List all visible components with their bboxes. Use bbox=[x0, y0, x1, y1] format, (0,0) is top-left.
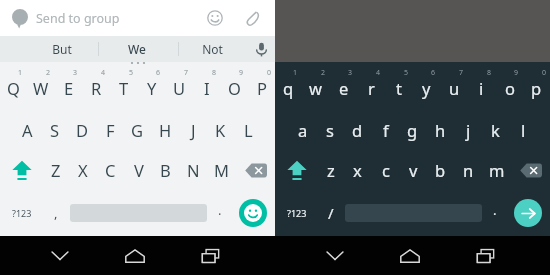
staticText: ?123 bbox=[287, 207, 307, 219]
button[interactable]: Y bbox=[138, 68, 165, 108]
button[interactable]: O bbox=[221, 68, 248, 108]
staticText: X bbox=[78, 159, 88, 181]
button[interactable]: x bbox=[344, 151, 371, 189]
button[interactable]: t bbox=[385, 68, 412, 108]
button[interactable]: Send bbox=[514, 199, 542, 227]
button[interactable]: y bbox=[413, 68, 440, 108]
button[interactable]: But bbox=[32, 36, 92, 62]
button[interactable]: B bbox=[152, 151, 179, 189]
button[interactable]: V bbox=[125, 151, 152, 189]
button[interactable]: E bbox=[55, 68, 82, 108]
button[interactable]: Send to group bbox=[0, 0, 275, 36]
button[interactable]: ?123 bbox=[277, 196, 317, 230]
staticText: We bbox=[128, 41, 146, 57]
staticText: q bbox=[283, 77, 294, 99]
button[interactable]: M bbox=[208, 151, 235, 189]
button[interactable]: Z bbox=[42, 151, 69, 189]
staticText: G bbox=[131, 119, 144, 141]
button[interactable]: N bbox=[180, 151, 207, 189]
button[interactable]: Back bbox=[317, 236, 353, 275]
button[interactable]: Back bbox=[42, 236, 78, 275]
button[interactable]: l bbox=[510, 111, 537, 149]
button[interactable]: U bbox=[166, 68, 193, 108]
button[interactable]: i bbox=[468, 68, 495, 108]
button[interactable]: P bbox=[248, 68, 275, 108]
staticText: m bbox=[489, 159, 505, 181]
button[interactable]: J bbox=[180, 111, 207, 149]
button[interactable]: Voice input bbox=[248, 36, 274, 62]
button[interactable]: d bbox=[344, 111, 371, 149]
staticText: J bbox=[191, 119, 196, 141]
button[interactable]: F bbox=[97, 111, 124, 149]
button[interactable]: S bbox=[41, 111, 68, 149]
staticText: Q bbox=[7, 77, 20, 99]
button[interactable]: j bbox=[455, 111, 482, 149]
button[interactable]: f bbox=[372, 111, 399, 149]
button[interactable]: T bbox=[110, 68, 137, 108]
staticText: 1 bbox=[18, 68, 23, 78]
staticText: W bbox=[33, 77, 49, 99]
button[interactable]: c bbox=[372, 151, 399, 189]
button[interactable]: C bbox=[97, 151, 124, 189]
staticText: 3 bbox=[348, 68, 353, 78]
button[interactable]: p bbox=[523, 68, 550, 108]
button[interactable]: / bbox=[319, 196, 343, 230]
button[interactable]: u bbox=[441, 68, 468, 108]
button[interactable]: g bbox=[399, 111, 426, 149]
button[interactable]: Q bbox=[0, 68, 27, 108]
staticText: 9 bbox=[239, 68, 244, 78]
staticText: 0 bbox=[542, 68, 547, 78]
button[interactable]: ?123 bbox=[2, 196, 42, 230]
button[interactable]: X bbox=[69, 151, 96, 189]
button[interactable]: z bbox=[317, 151, 344, 189]
button[interactable]: Attach file bbox=[241, 6, 265, 30]
button[interactable]: a bbox=[289, 111, 316, 149]
button[interactable]: h bbox=[427, 111, 454, 149]
button[interactable]: R bbox=[83, 68, 110, 108]
button[interactable]: b bbox=[427, 151, 454, 189]
button[interactable]: r bbox=[358, 68, 385, 108]
button[interactable]: Not bbox=[182, 36, 242, 62]
button[interactable]: w bbox=[302, 68, 329, 108]
button[interactable]: I bbox=[193, 68, 220, 108]
button[interactable]: We bbox=[107, 36, 167, 62]
button[interactable]: Home bbox=[392, 236, 428, 275]
button[interactable]: . bbox=[209, 196, 231, 230]
button[interactable]: G bbox=[124, 111, 151, 149]
button[interactable]: Recent apps bbox=[467, 236, 503, 275]
button[interactable]: Shift bbox=[278, 151, 316, 189]
button[interactable]: Backspace bbox=[513, 151, 549, 189]
staticText: / bbox=[328, 203, 334, 223]
staticText: 4 bbox=[376, 68, 381, 78]
button[interactable]: k bbox=[482, 111, 509, 149]
button[interactable]: H bbox=[152, 111, 179, 149]
button[interactable]: Emoji bbox=[239, 199, 267, 227]
staticText: 7 bbox=[459, 68, 464, 78]
button[interactable]: Backspace bbox=[238, 151, 274, 189]
button[interactable]: , bbox=[44, 196, 68, 230]
button[interactable]: Recent apps bbox=[192, 236, 228, 275]
button[interactable]: o bbox=[496, 68, 523, 108]
button[interactable]: q bbox=[275, 68, 302, 108]
staticText: v bbox=[409, 159, 418, 181]
button[interactable]: Shift bbox=[3, 151, 41, 189]
button[interactable]: m bbox=[483, 151, 510, 189]
button[interactable]: e bbox=[330, 68, 357, 108]
staticText: y bbox=[422, 77, 431, 99]
button[interactable]: Home bbox=[117, 236, 153, 275]
button[interactable]: n bbox=[455, 151, 482, 189]
button[interactable]: W bbox=[27, 68, 54, 108]
button[interactable]: K bbox=[207, 111, 234, 149]
staticText: . bbox=[493, 201, 497, 219]
button[interactable]: s bbox=[316, 111, 343, 149]
button[interactable]: D bbox=[69, 111, 96, 149]
staticText: 6 bbox=[431, 68, 436, 78]
button[interactable]: . bbox=[484, 196, 506, 230]
button[interactable]: L bbox=[235, 111, 262, 149]
button[interactable]: A bbox=[14, 111, 41, 149]
button[interactable]: v bbox=[400, 151, 427, 189]
staticText: 8 bbox=[487, 68, 492, 78]
button[interactable]: Insert emoji bbox=[203, 6, 227, 30]
